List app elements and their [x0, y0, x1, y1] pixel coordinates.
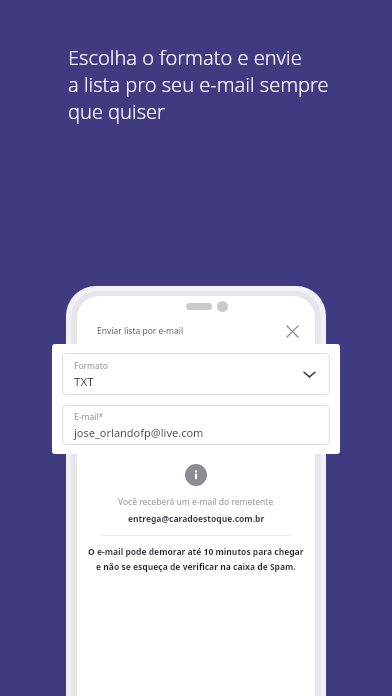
staticText: e não se esqueça de verificar na caixa d… — [96, 561, 296, 573]
staticText: jose_orlandofp@live.com — [74, 425, 204, 440]
staticText: O e-mail pode demorar até 10 minutos par… — [88, 546, 304, 558]
staticText: E-mail* — [74, 411, 104, 423]
staticText: Enviar lista por e-mail — [97, 325, 184, 337]
staticText: Você receberá um e-mail do remetente — [118, 496, 274, 508]
button[interactable]: Enviar lista por e-mail — [77, 318, 315, 344]
staticText: entrega@caradoestoque.com.br — [128, 513, 265, 525]
button[interactable]: E-mail* — [62, 405, 330, 445]
staticText: TXT — [74, 374, 94, 390]
staticText: Formato — [74, 360, 108, 372]
button[interactable]: Fechar — [283, 322, 301, 340]
other: Abrir formatos — [302, 367, 316, 381]
button[interactable]: Formato — [62, 353, 330, 395]
staticText: Escolha o formato e envie a lista pro se… — [68, 44, 329, 125]
